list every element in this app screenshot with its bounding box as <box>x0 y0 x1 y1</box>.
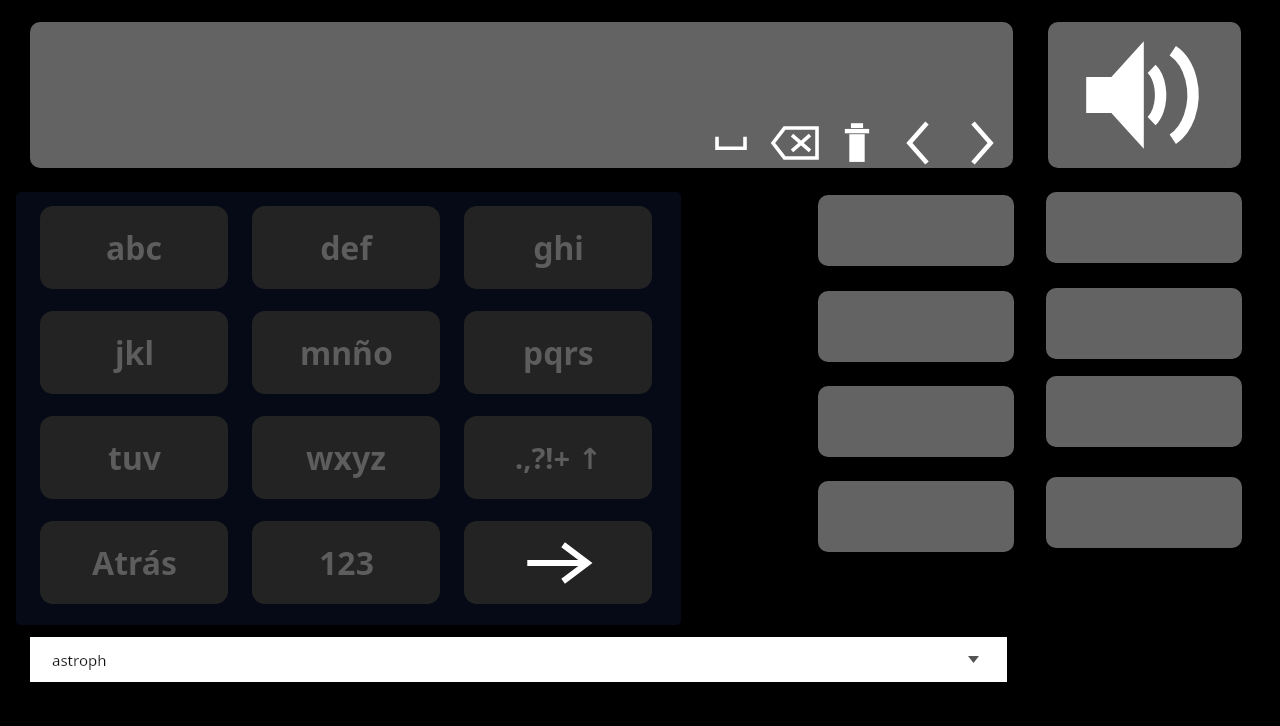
button[interactable]: ghi <box>464 206 652 289</box>
button[interactable]: def <box>252 206 440 289</box>
staticText: 123 <box>319 541 374 585</box>
button[interactable]: Backspace <box>770 121 820 165</box>
button[interactable]: tuv <box>40 416 228 499</box>
staticText: tuv <box>108 436 161 480</box>
staticText: astroph <box>52 650 107 670</box>
button[interactable]: Next page <box>961 118 1001 168</box>
button[interactable]: astroph <box>30 637 1007 682</box>
button[interactable]: Space <box>711 126 751 162</box>
button[interactable]: Message text area <box>30 22 1013 168</box>
staticText: .,?!+ ↑ <box>515 438 602 477</box>
button[interactable]: Slot 6 <box>1046 288 1242 359</box>
button[interactable]: .,?!+ ↑ <box>464 416 652 499</box>
button[interactable]: jkl <box>40 311 228 394</box>
staticText: wxyz <box>306 436 386 480</box>
button[interactable]: Speak message <box>1048 22 1241 168</box>
staticText: Atrás <box>92 541 177 585</box>
button[interactable]: abc <box>40 206 228 289</box>
button[interactable]: Clear all <box>841 121 873 165</box>
button[interactable]: mnño <box>252 311 440 394</box>
staticText: ghi <box>533 226 584 270</box>
staticText: def <box>320 226 372 270</box>
staticText: pqrs <box>523 331 594 375</box>
staticText: abc <box>106 226 162 270</box>
button[interactable]: Slot 5 <box>1046 192 1242 263</box>
button[interactable]: wxyz <box>252 416 440 499</box>
button[interactable]: 123 <box>252 521 440 604</box>
button[interactable]: pqrs <box>464 311 652 394</box>
button[interactable]: Slot 8 <box>1046 477 1242 548</box>
button[interactable]: Atrás <box>40 521 228 604</box>
button[interactable]: Slot 4 <box>818 481 1014 552</box>
button[interactable]: Slot 7 <box>1046 376 1242 447</box>
button[interactable]: Slot 3 <box>818 386 1014 457</box>
staticText: mnño <box>300 331 393 375</box>
button[interactable]: Enter <box>464 521 652 604</box>
button[interactable]: Previous page <box>899 118 939 168</box>
button[interactable]: Slot 1 <box>818 195 1014 266</box>
staticText: jkl <box>115 331 154 375</box>
button[interactable]: Slot 2 <box>818 291 1014 362</box>
